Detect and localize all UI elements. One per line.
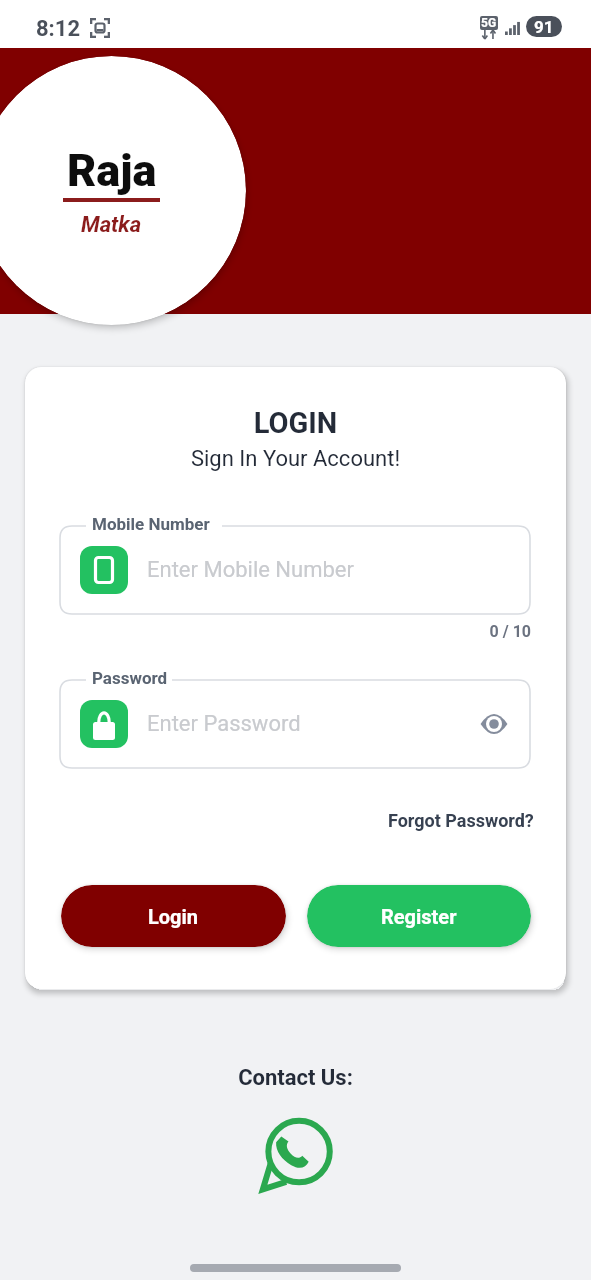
staticText: Register (381, 905, 457, 928)
staticText: Password (92, 668, 168, 688)
button[interactable]: WhatsApp (255, 1116, 335, 1196)
staticText: Sign In Your Account! (25, 446, 566, 472)
staticText: Login (148, 905, 199, 928)
staticText: 5G (481, 16, 497, 30)
staticText: Mobile Number (92, 514, 210, 534)
staticText: 8:12 (36, 16, 81, 42)
button[interactable]: Forgot Password? (376, 804, 546, 837)
staticText: Raja (67, 144, 157, 197)
staticText: 0 / 10 (25, 622, 531, 641)
staticText: Matka (81, 212, 142, 238)
staticText: Forgot Password? (388, 810, 534, 831)
button[interactable]: Show password (474, 704, 514, 744)
staticText: LOGIN (25, 406, 566, 440)
staticText: Enter Password (147, 711, 301, 737)
staticText: Enter Mobile Number (147, 557, 354, 583)
staticText: Contact Us: (0, 1065, 591, 1091)
button[interactable]: Enter Password (60, 680, 530, 768)
button[interactable]: Enter Mobile Number (60, 526, 530, 614)
staticText: 91 (534, 17, 554, 37)
button[interactable]: Register (307, 885, 531, 947)
button[interactable]: Login (61, 885, 286, 947)
